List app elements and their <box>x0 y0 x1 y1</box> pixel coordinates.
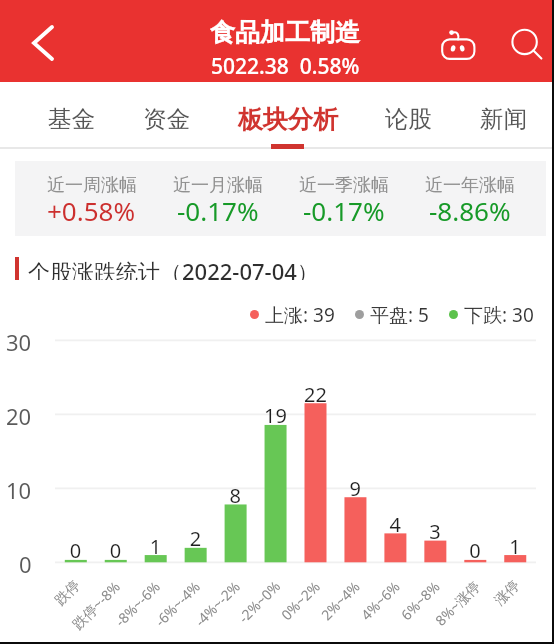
staticText: -0.17% <box>177 193 259 228</box>
button[interactable]: Back <box>18 19 66 67</box>
button[interactable]: 近一周涨幅 <box>28 161 155 236</box>
staticText: 基金 <box>48 104 95 134</box>
button[interactable]: 平盘: 5 <box>355 302 429 326</box>
button[interactable]: 上涨: 39 <box>250 302 335 326</box>
staticText: 资金 <box>143 104 190 134</box>
staticText: -8.86% <box>429 193 511 228</box>
button[interactable]: 近一年涨幅 <box>407 161 533 236</box>
staticText: 近一年涨幅 <box>425 174 515 197</box>
staticText: 近一周涨幅 <box>47 174 137 197</box>
button[interactable]: 近一月涨幅 <box>155 161 281 236</box>
button[interactable]: 基金 <box>48 82 95 134</box>
staticText: 个股涨跌统计（2022-07-04） <box>28 256 319 280</box>
button[interactable]: 下跌: 30 <box>449 302 534 326</box>
staticText: 5022.38 0.58% <box>211 52 360 81</box>
button[interactable]: 近一季涨幅 <box>281 161 407 236</box>
button[interactable]: Search <box>500 17 550 67</box>
button[interactable]: 板块分析 <box>238 82 338 135</box>
button[interactable]: 论股 <box>385 82 432 134</box>
button[interactable]: 新闻 <box>480 82 527 134</box>
button[interactable]: AI assistant <box>433 17 483 67</box>
staticText: 板块分析 <box>238 104 338 135</box>
staticText: -0.17% <box>303 193 385 228</box>
staticText: 平盘: 5 <box>370 302 429 326</box>
staticText: 下跌: 30 <box>464 302 534 326</box>
staticText: 近一月涨幅 <box>173 174 263 197</box>
staticText: 上涨: 39 <box>265 302 335 326</box>
staticText: 食品加工制造 <box>210 17 360 48</box>
staticText: 论股 <box>385 104 432 134</box>
button[interactable]: 资金 <box>143 82 190 134</box>
staticText: 新闻 <box>480 104 527 134</box>
staticText: 近一季涨幅 <box>299 174 389 197</box>
staticText: +0.58% <box>47 193 136 228</box>
